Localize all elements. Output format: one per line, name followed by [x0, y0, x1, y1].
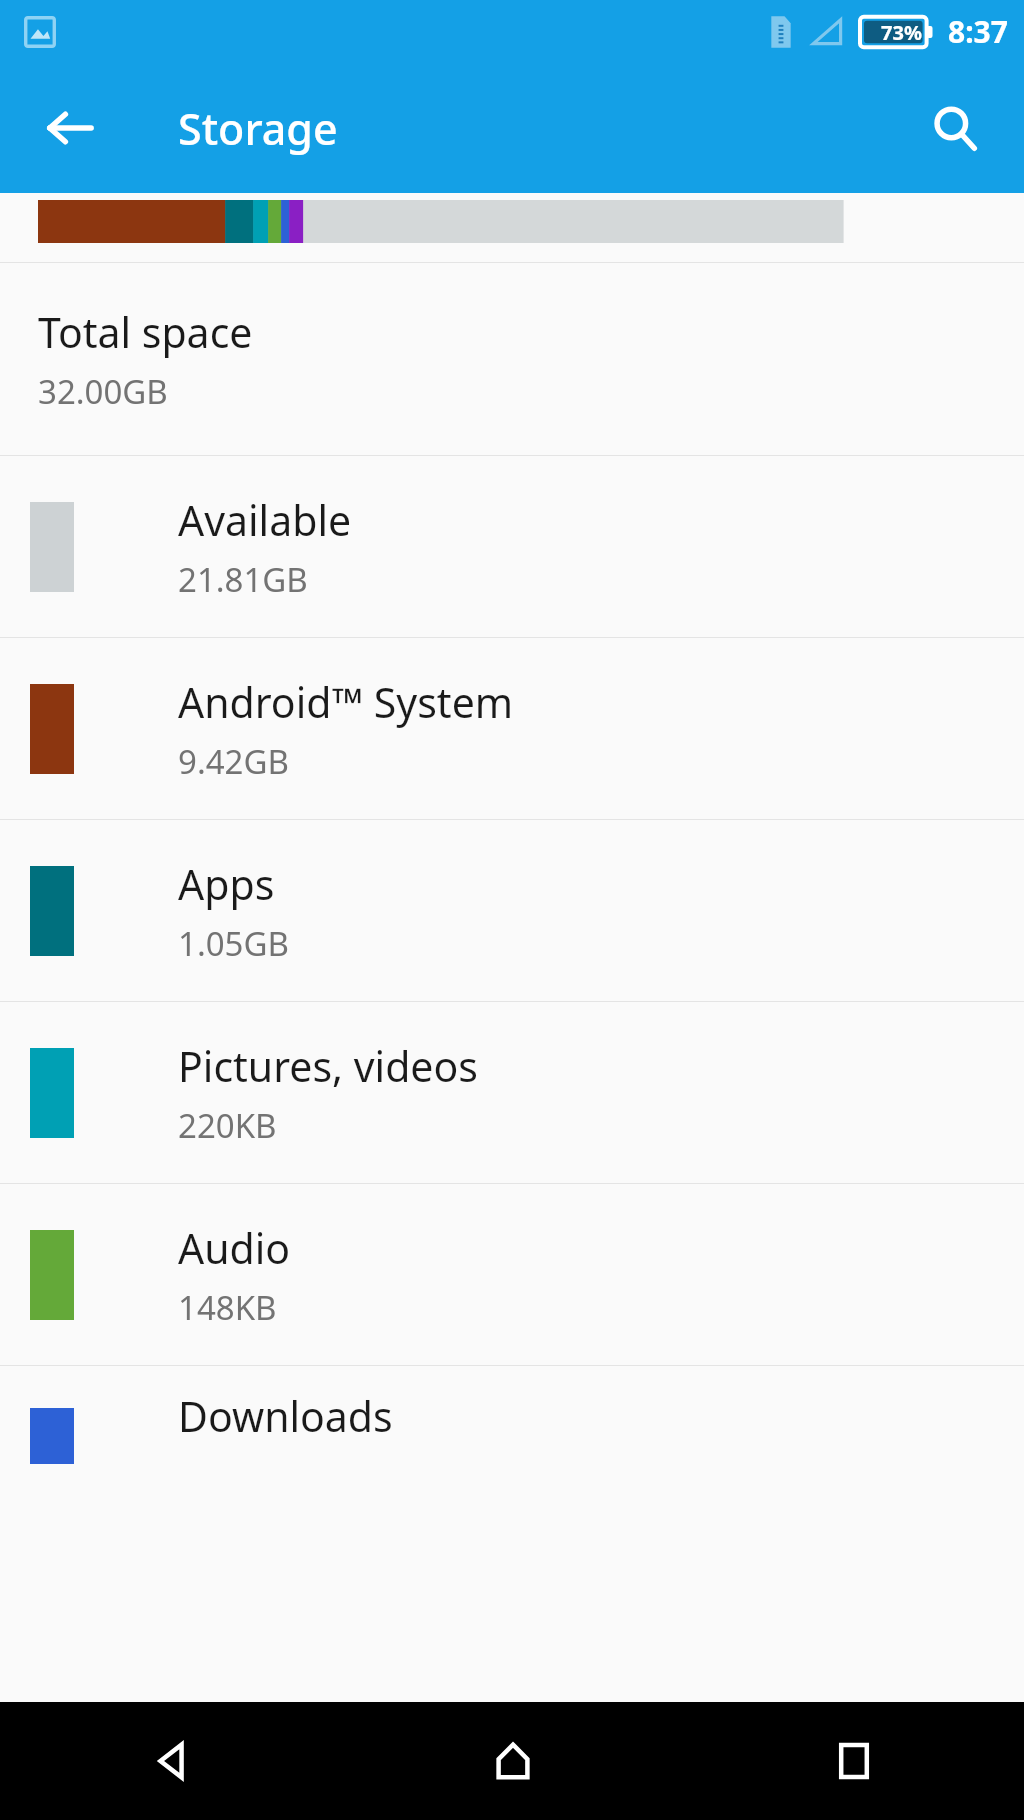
staticText: Available [178, 492, 352, 548]
button[interactable]: Apps [0, 820, 1024, 1001]
button[interactable]: Home [342, 1702, 683, 1820]
button[interactable]: Available [0, 456, 1024, 637]
button[interactable]: Back [0, 1702, 342, 1820]
staticText: Apps [178, 856, 275, 912]
staticText: Downloads [178, 1388, 393, 1444]
staticText: Pictures, videos [178, 1038, 478, 1094]
button[interactable]: Android™ System [0, 638, 1024, 819]
button[interactable]: Total space [0, 263, 1024, 455]
staticText: 21.81GB [178, 557, 308, 602]
button[interactable]: Search [922, 95, 988, 161]
staticText: 9.42GB [178, 739, 289, 784]
staticText: 73% [881, 19, 922, 46]
staticText: Android™ System [178, 674, 514, 730]
button[interactable]: Back [40, 98, 100, 158]
staticText: Audio [178, 1220, 291, 1276]
button[interactable]: Pictures, videos [0, 1002, 1024, 1183]
staticText: Storage [178, 99, 338, 158]
staticText: Total space [38, 304, 253, 360]
staticText: 8:37 [948, 11, 1008, 52]
staticText: 1.05GB [178, 921, 289, 966]
staticText: 220KB [178, 1103, 277, 1148]
button[interactable]: Recent apps [683, 1702, 1024, 1820]
button[interactable]: Downloads [0, 1366, 1024, 1464]
button[interactable]: Audio [0, 1184, 1024, 1365]
staticText: 148KB [178, 1285, 277, 1330]
staticText: 32.00GB [38, 369, 168, 414]
